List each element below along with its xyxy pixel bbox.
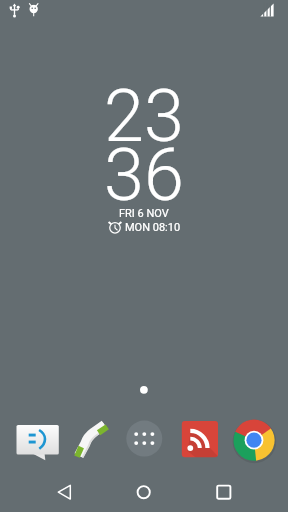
staticText: FRI 6 NOV (119, 207, 169, 220)
staticText: 23 (104, 74, 184, 158)
button[interactable]: Chrome (232, 418, 276, 462)
button[interactable]: Home (120, 476, 168, 508)
button[interactable]: Recent apps (200, 476, 248, 508)
button[interactable]: Phone (71, 419, 113, 461)
staticText: MON 08:10 (125, 221, 181, 234)
button[interactable]: RSS Reader (181, 420, 219, 459)
button[interactable]: Messaging (14, 420, 61, 462)
button[interactable]: Apps (125, 419, 164, 458)
staticText: 36 (104, 133, 184, 217)
button[interactable]: Back (40, 476, 88, 508)
